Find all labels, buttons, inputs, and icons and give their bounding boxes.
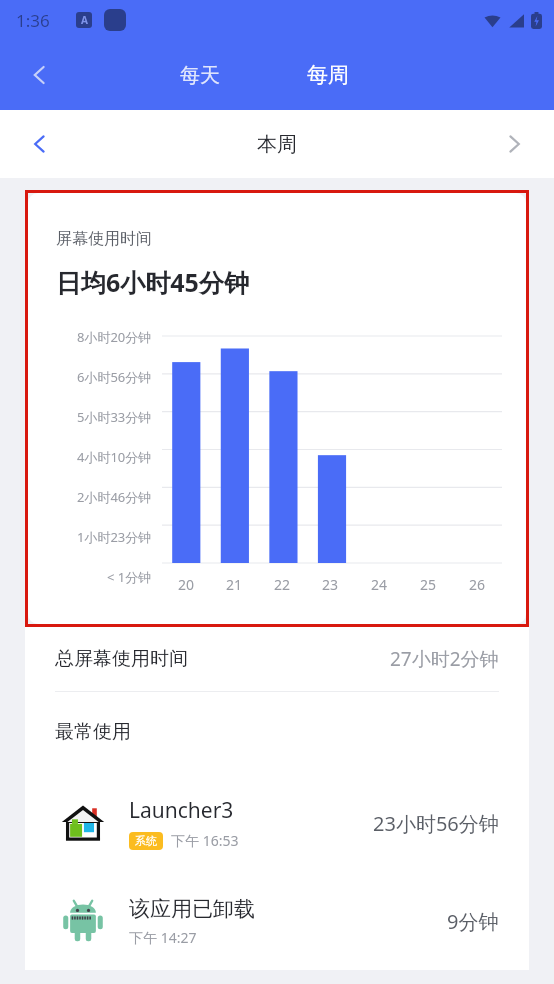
staticText: 24 [371,575,388,594]
staticText: 本周 [257,132,297,157]
button[interactable]: Previous week [18,122,62,166]
staticText: A [81,13,88,27]
staticText: 该应用已卸载 [129,896,255,922]
staticText: 总屏幕使用时间 [55,647,188,671]
staticText: < 1分钟 [107,568,152,584]
staticText: 1小时23分钟 [77,528,152,544]
button[interactable]: 每周 [307,62,349,88]
staticText: 日均6小时45分钟 [56,265,249,299]
staticText: 22 [274,575,291,594]
button[interactable]: 该应用已卸载 [25,872,529,970]
staticText: 2小时46分钟 [77,488,152,504]
staticText: 9分钟 [447,908,499,935]
staticText: 每天 [180,63,220,88]
staticText: Launcher3 [129,796,234,825]
staticText: 8小时20分钟 [77,328,152,344]
button[interactable]: Back [18,53,62,97]
staticText: 21 [226,575,243,594]
staticText: 23小时56分钟 [373,810,499,837]
button[interactable]: 总屏幕使用时间 [25,627,529,691]
staticText: 下午 16:53 [171,831,239,850]
staticText: 20 [178,575,195,594]
staticText: 27小时2分钟 [390,646,499,672]
staticText: 4小时10分钟 [77,448,152,464]
staticText: 25 [420,575,437,594]
staticText: 最常使用 [55,720,131,744]
staticText: 每周 [307,62,349,88]
staticText: 26 [469,575,486,594]
staticText: 下午 14:27 [129,928,197,947]
staticText: 5小时33分钟 [77,408,152,424]
staticText: 系统 [135,834,157,848]
staticText: 屏幕使用时间 [56,229,152,249]
staticText: 6小时56分钟 [77,368,152,384]
staticText: 23 [322,575,339,594]
button[interactable]: Launcher3 [25,774,529,872]
button[interactable]: 屏幕使用时间 [28,193,526,624]
staticText: 1:36 [16,9,50,32]
button[interactable]: Next week [492,122,536,166]
button[interactable]: 每天 [180,63,220,88]
